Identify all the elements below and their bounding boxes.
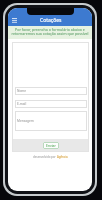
button[interactable]: Menu bbox=[10, 16, 18, 24]
button[interactable]: Nome bbox=[15, 87, 87, 95]
button[interactable]: Enviar bbox=[43, 142, 59, 149]
staticText: Enviar bbox=[46, 143, 56, 148]
staticText: E-mail bbox=[17, 102, 27, 106]
button[interactable]: E-mail bbox=[15, 100, 87, 108]
staticText: Cotações bbox=[40, 17, 62, 24]
staticText: desenvolvido por bbox=[33, 155, 57, 159]
staticText: Mensagem bbox=[17, 119, 34, 123]
staticText: Agência bbox=[57, 155, 68, 159]
button[interactable]: Mensagem bbox=[15, 111, 87, 131]
staticText: Nome bbox=[17, 89, 27, 93]
staticText: Por favor, preencha o formulário abaixo … bbox=[8, 27, 92, 37]
